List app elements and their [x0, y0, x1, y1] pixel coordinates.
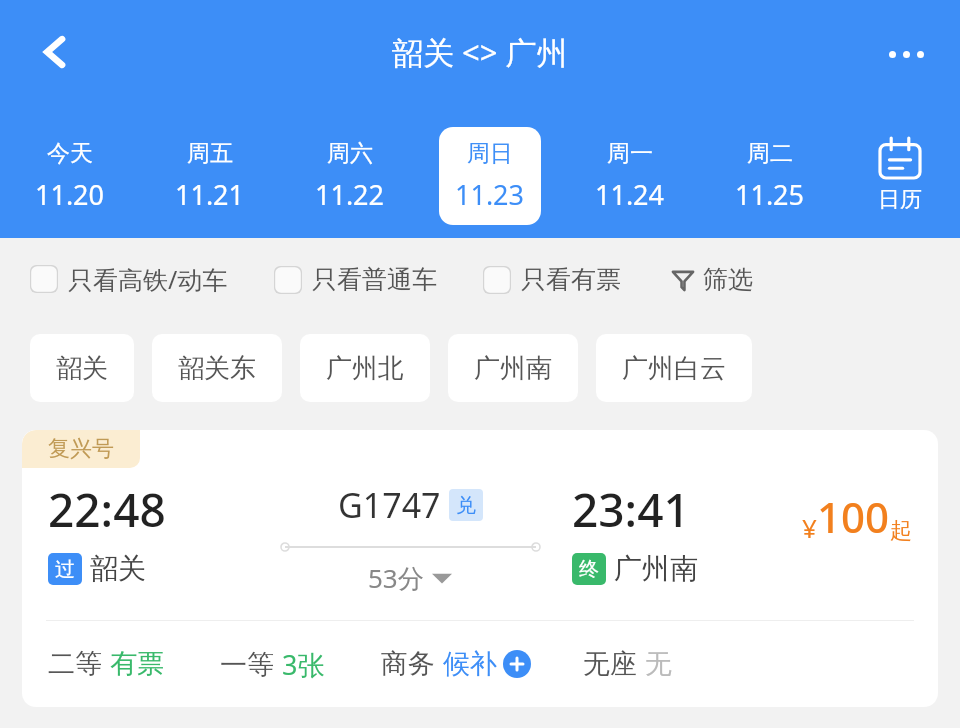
staticText: 一等 — [220, 648, 274, 682]
button[interactable]: 今天 — [0, 113, 140, 238]
staticText: G1747 — [338, 482, 441, 528]
staticText: 韶关 — [90, 551, 146, 586]
button[interactable]: 广州南 — [448, 334, 578, 402]
staticText: 3张 — [282, 646, 325, 683]
button[interactable]: 周二 — [700, 113, 840, 238]
staticText: 商务 — [381, 647, 435, 681]
button[interactable]: 韶关东 — [152, 334, 282, 402]
staticText: 周日 — [467, 139, 513, 168]
staticText: 11.20 — [35, 176, 105, 213]
staticText: 日历 — [878, 186, 922, 214]
button[interactable]: 周一 — [560, 113, 700, 238]
button[interactable]: 只看普通车 — [274, 258, 437, 301]
staticText: 22:48 — [48, 478, 166, 541]
staticText: 广州北 — [326, 352, 404, 385]
staticText: 筛选 — [703, 264, 753, 295]
staticText: 广州南 — [474, 352, 552, 385]
button[interactable]: 周五 — [140, 113, 280, 238]
staticText: 终 — [579, 557, 599, 582]
staticText: 11.24 — [595, 176, 665, 213]
button[interactable]: 广州白云 — [596, 334, 752, 402]
staticText: 二等 — [48, 647, 102, 681]
staticText: 只看有票 — [521, 264, 621, 295]
staticText: 韶关 — [56, 352, 108, 385]
staticText: 广州白云 — [622, 352, 726, 385]
button[interactable]: 筛选 — [667, 258, 757, 301]
staticText: 无座 — [583, 647, 637, 681]
staticText: 起 — [890, 517, 912, 545]
button[interactable]: Back — [20, 16, 92, 88]
staticText: 韶关 <> 广州 — [392, 31, 568, 73]
staticText: 复兴号 — [48, 435, 114, 463]
staticText: 周五 — [187, 139, 233, 168]
staticText: 无 — [645, 647, 672, 681]
staticText: 11.23 — [455, 176, 525, 213]
button[interactable]: 韶关 — [30, 334, 134, 402]
button[interactable]: 广州北 — [300, 334, 430, 402]
button[interactable]: 只看高铁/动车 — [30, 256, 228, 302]
staticText: 53分 — [368, 560, 424, 596]
staticText: 过 — [55, 557, 75, 582]
staticText: 有票 — [110, 647, 164, 681]
button[interactable]: Calendar — [840, 113, 960, 238]
staticText: 兑 — [456, 493, 476, 518]
button[interactable]: 复兴号 — [22, 430, 938, 707]
staticText: 今天 — [47, 139, 93, 168]
staticText: 周二 — [747, 139, 793, 168]
staticText: 只看普通车 — [312, 264, 437, 295]
button[interactable]: 只看有票 — [483, 258, 621, 301]
button[interactable]: 周日 — [420, 113, 560, 238]
staticText: 候补 — [443, 647, 497, 681]
staticText: 100 — [817, 488, 890, 545]
staticText: 11.22 — [315, 176, 385, 213]
staticText: 11.25 — [735, 176, 805, 213]
staticText: 周六 — [327, 139, 373, 168]
staticText: 23:41 — [572, 478, 690, 541]
staticText: 11.21 — [175, 176, 245, 213]
staticText: 周一 — [607, 139, 653, 168]
staticText: 广州南 — [614, 551, 698, 586]
staticText: 韶关东 — [178, 352, 256, 385]
staticText: ¥ — [802, 510, 817, 545]
staticText: 只看高铁/动车 — [68, 262, 228, 296]
button[interactable]: More options — [868, 16, 944, 92]
button[interactable]: 周六 — [280, 113, 420, 238]
